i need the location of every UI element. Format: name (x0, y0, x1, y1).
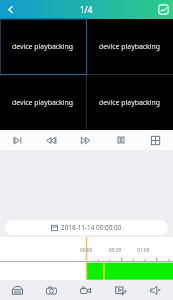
staticText: 2018-11-14 00:00:00 (61, 223, 122, 232)
button[interactable]: Record (68, 280, 103, 300)
staticText: device playbacking (99, 98, 161, 107)
button[interactable]: 2018-11-14 00:00:00 (5, 220, 168, 235)
staticText: device playbacking (12, 98, 74, 107)
button[interactable]: device playbacking (86, 19, 173, 74)
button[interactable]: Clip (103, 280, 138, 300)
button[interactable]: Playback timeline (0, 237, 173, 280)
button[interactable]: Device list (0, 280, 34, 300)
staticText: 00:00 (80, 247, 93, 254)
staticText: 00:30 (109, 247, 122, 254)
button[interactable]: Back (0, 0, 20, 19)
button[interactable]: Previous frame (0, 130, 34, 150)
button[interactable]: Mute (138, 280, 173, 300)
button[interactable]: Pause (103, 130, 138, 150)
staticText: device playbacking (99, 42, 161, 51)
button[interactable]: Rewind (34, 130, 68, 150)
button[interactable]: Snapshots (153, 0, 173, 19)
staticText: device playbacking (12, 42, 74, 51)
button[interactable]: device playbacking (0, 74, 86, 130)
button[interactable]: Change layout (138, 130, 173, 150)
button[interactable]: Fast forward (68, 130, 103, 150)
button[interactable]: device playbacking (0, 19, 86, 74)
staticText: 1/4 (80, 4, 93, 15)
staticText: 01:00 (137, 247, 150, 254)
button[interactable]: device playbacking (86, 74, 173, 130)
button[interactable]: Snapshot (34, 280, 68, 300)
